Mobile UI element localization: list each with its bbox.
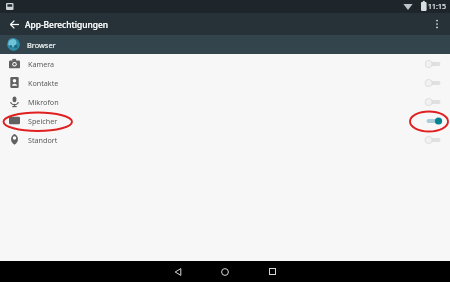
staticText: App-Berechtigungen <box>25 19 108 30</box>
staticText: 11:15 <box>428 2 446 12</box>
button[interactable]: Übersicht <box>257 261 287 282</box>
button[interactable]: Standort <box>0 130 450 149</box>
button[interactable]: Kamera <box>0 54 450 73</box>
button[interactable]: Kontakte <box>0 73 450 92</box>
button[interactable]: Speicher <box>0 111 450 130</box>
button[interactable]: Mikrofon <box>0 92 450 111</box>
button[interactable]: Aus <box>424 133 444 147</box>
staticText: Browser <box>27 40 56 50</box>
button[interactable]: Zurück <box>6 16 22 32</box>
staticText: Kontakte <box>28 78 59 88</box>
button[interactable]: Aus <box>424 57 444 71</box>
staticText: Kamera <box>28 59 55 69</box>
button[interactable]: Aus <box>424 76 444 90</box>
staticText: Speicher <box>28 116 58 126</box>
button[interactable]: Aus <box>424 95 444 109</box>
button[interactable]: An <box>424 114 444 128</box>
button[interactable]: Mehr Optionen <box>428 15 446 33</box>
button[interactable]: Zurück <box>163 261 193 282</box>
staticText: Standort <box>28 135 58 145</box>
button[interactable]: Startbildschirm <box>210 261 240 282</box>
button[interactable]: Browser <box>0 35 450 54</box>
staticText: Mikrofon <box>28 97 59 107</box>
